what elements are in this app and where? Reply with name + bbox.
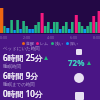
button[interactable]: 睡眠までの時間 <box>3 82 58 99</box>
staticText: ベッドにいた時間 <box>3 46 40 52</box>
other: 就寝時刻 <box>74 73 84 83</box>
button[interactable]: 浅い <box>50 41 65 46</box>
staticText: 6:00 <box>70 35 77 40</box>
staticText: 深い <box>70 41 79 46</box>
button[interactable]: 深い <box>65 41 80 46</box>
staticText: 6時間 9分 <box>3 70 39 81</box>
staticText: 6時間 25分 <box>3 52 43 63</box>
button[interactable]: 睡眠時間 <box>3 64 58 81</box>
button[interactable]: レム <box>35 41 50 46</box>
staticText: 0時間 10分 <box>3 88 43 99</box>
staticText: 8:00 <box>93 35 100 40</box>
other: 睡眠スコア <box>76 49 82 55</box>
button[interactable]: ベッドにいた時間 <box>3 46 58 63</box>
other: 起床時刻 <box>75 92 84 100</box>
staticText: 2:00 <box>23 35 30 40</box>
button[interactable]: 72% <box>68 57 91 68</box>
button[interactable]: 覚醒 <box>21 41 35 46</box>
staticText: 覚醒 <box>26 41 34 46</box>
staticText: 浅い <box>55 41 64 46</box>
staticText: 0:00 <box>0 35 7 40</box>
staticText: 睡眠までの時間 <box>3 82 35 88</box>
staticText: 4:00 <box>47 35 54 40</box>
staticText: レム <box>40 41 49 46</box>
staticText: 睡眠時間 <box>3 64 21 70</box>
staticText: 72% <box>68 57 85 68</box>
